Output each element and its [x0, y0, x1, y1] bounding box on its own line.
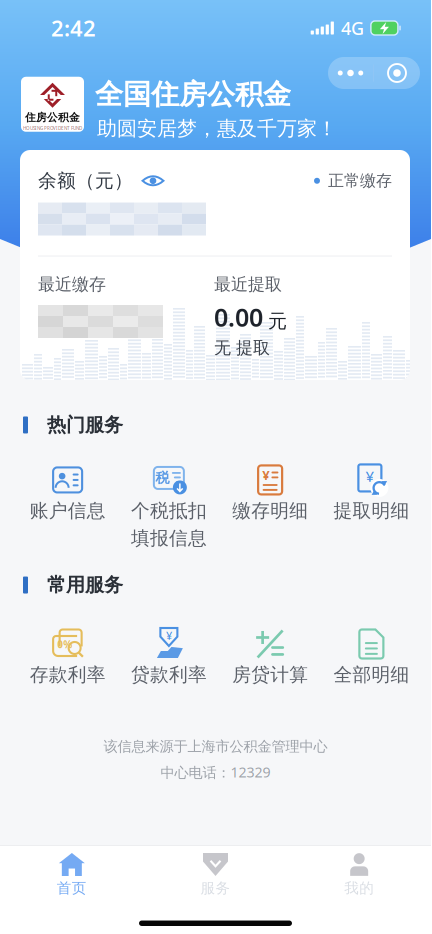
button[interactable]: 关闭 — [374, 57, 420, 89]
button[interactable]: 更多 — [328, 57, 373, 89]
button[interactable]: 我的 — [287, 846, 431, 898]
button[interactable]: 全部明细 — [321, 631, 422, 687]
button[interactable]: ¥ — [219, 467, 321, 522]
button[interactable]: ¥ — [321, 467, 422, 522]
staticText: ¥ — [166, 628, 172, 643]
staticText: 助圆安居梦，惠及千万家！ — [97, 116, 337, 141]
staticText: 全国住房公积金 — [95, 77, 291, 112]
staticText: 余额（元） — [38, 169, 133, 193]
staticText: 个税抵扣 — [131, 499, 207, 522]
staticText: 服务 — [200, 879, 230, 897]
staticText: 首页 — [57, 879, 87, 897]
staticText: ¥ — [262, 466, 269, 484]
staticText: 元 — [268, 309, 287, 333]
staticText: 全部明细 — [333, 663, 409, 687]
button[interactable]: 税 — [118, 467, 220, 550]
button[interactable]: 服务 — [144, 846, 287, 898]
staticText: 最近提取 — [214, 274, 282, 295]
staticText: 最近缴存 — [38, 274, 106, 295]
staticText: 存款利率 — [30, 663, 106, 687]
staticText: 税 — [155, 469, 169, 487]
staticText: 2:42 — [51, 13, 96, 43]
staticText: 我的 — [344, 879, 374, 897]
button[interactable]: 0% — [17, 631, 118, 687]
staticText: 0% — [57, 638, 72, 651]
button[interactable]: ¥ — [118, 631, 220, 687]
staticText: HOUSING PROVIDENT FUND — [23, 125, 82, 131]
staticText: 该信息来源于上海市公积金管理中心 — [103, 737, 327, 755]
staticText: 账户信息 — [30, 499, 106, 522]
staticText: 提取明细 — [333, 499, 409, 522]
staticText: ¥ — [365, 466, 374, 486]
staticText: 中心电话：12329 — [160, 762, 270, 782]
staticText: 无 提取 — [214, 337, 270, 358]
staticText: 常用服务 — [47, 573, 123, 597]
staticText: 缴存明细 — [232, 499, 308, 522]
staticText: 贷款利率 — [131, 663, 207, 687]
staticText: 热门服务 — [47, 413, 123, 437]
button[interactable]: 账户信息 — [17, 467, 118, 522]
button[interactable]: 房贷计算 — [219, 631, 321, 687]
staticText: 房贷计算 — [232, 663, 308, 687]
staticText: 4G — [341, 16, 364, 40]
button[interactable]: 首页 — [0, 846, 144, 898]
staticText: 正常缴存 — [328, 171, 392, 191]
staticText: 填报信息 — [131, 526, 207, 550]
staticText: 0.00 — [214, 300, 263, 334]
staticText: 住房公积金 — [25, 111, 80, 124]
